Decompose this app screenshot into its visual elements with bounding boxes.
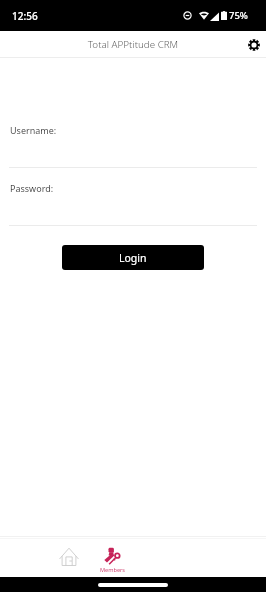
- staticText: Username:: [10, 124, 57, 136]
- button[interactable]: Members: [94, 539, 131, 577]
- button[interactable]: Home: [50, 539, 87, 577]
- button[interactable]: Settings: [244, 35, 264, 55]
- staticText: Members: [100, 566, 126, 574]
- staticText: Total APPtitude CRM: [0, 38, 266, 51]
- button[interactable]: Login: [62, 245, 204, 270]
- staticText: 12:56: [12, 9, 38, 23]
- staticText: Password:: [10, 182, 54, 194]
- staticText: Login: [119, 251, 147, 265]
- staticText: 75%: [229, 9, 248, 22]
